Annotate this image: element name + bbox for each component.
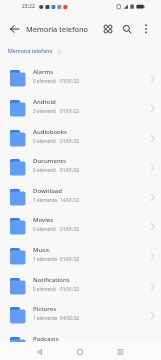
staticText: 3 elementi — [33, 108, 56, 114]
staticText: 01/01/22 — [60, 345, 80, 351]
button[interactable]: Movies — [0, 212, 161, 242]
staticText: Notifications — [33, 276, 70, 284]
button[interactable]: Documents — [0, 153, 161, 183]
button[interactable]: Android — [0, 94, 161, 124]
staticText: 14/01/22 — [60, 197, 80, 203]
staticText: 0 elementi — [33, 138, 56, 144]
button[interactable]: Alarms — [0, 64, 161, 94]
staticText: 23:22 — [22, 3, 35, 10]
button[interactable] — [30, 342, 50, 360]
button[interactable] — [138, 21, 154, 37]
staticText: 1 elemento — [33, 197, 58, 203]
staticText: Download — [33, 187, 62, 195]
button[interactable]: Podcasts — [0, 331, 161, 360]
staticText: 01/01/22 — [60, 256, 80, 262]
staticText: 01/01/22 — [60, 108, 80, 114]
staticText: Music — [33, 246, 50, 254]
button[interactable] — [100, 21, 116, 37]
button[interactable]: Audiobooks — [0, 124, 161, 154]
staticText: 01/01/22 — [60, 286, 80, 292]
staticText: Audiobooks — [33, 128, 68, 136]
button[interactable] — [110, 342, 130, 360]
staticText: Documents — [33, 157, 66, 165]
staticText: 0 elementi — [33, 286, 56, 292]
staticText: Android — [33, 98, 56, 106]
button[interactable]: Music — [0, 242, 161, 272]
staticText: 1 elemento — [33, 315, 58, 321]
staticText: Alarms — [33, 68, 54, 76]
staticText: Memoria telefono — [26, 24, 88, 34]
staticText: 0 elementi — [33, 78, 56, 84]
button[interactable]: Memoria telefono — [0, 44, 161, 58]
staticText: Memoria telefono — [8, 47, 53, 54]
staticText: 1 elemento — [33, 256, 58, 262]
button[interactable] — [4, 19, 24, 39]
staticText: 04/02/22 — [60, 315, 80, 321]
staticText: 01/01/22 — [60, 167, 80, 173]
staticText: Podcasts — [33, 335, 59, 343]
staticText: 01/01/22 — [60, 226, 80, 232]
button[interactable] — [119, 21, 135, 37]
button[interactable]: Download — [0, 183, 161, 213]
staticText: 01/01/22 — [60, 78, 80, 84]
button[interactable]: Notifications — [0, 272, 161, 302]
staticText: 0 elementi — [33, 226, 56, 232]
button[interactable] — [70, 342, 90, 360]
staticText: 0 elementi — [33, 167, 56, 173]
staticText: 01/01/22 — [60, 138, 80, 144]
staticText: 0 elementi — [33, 345, 56, 351]
staticText: Pictures — [33, 305, 57, 313]
button[interactable]: Pictures — [0, 301, 161, 331]
staticText: Movies — [33, 216, 54, 224]
